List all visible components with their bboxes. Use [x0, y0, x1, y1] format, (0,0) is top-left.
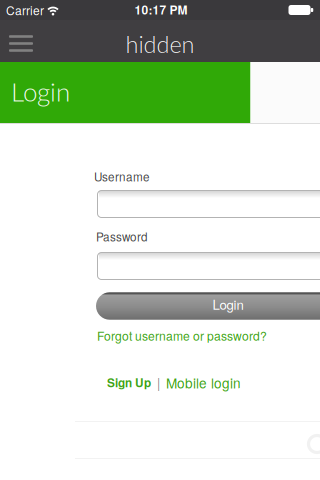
staticText: Carrier: [6, 1, 44, 19]
staticText: Login: [212, 294, 243, 313]
button[interactable]: Login: [96, 292, 320, 320]
staticText: Username: [94, 168, 150, 185]
button[interactable]: Forgot username or password?: [97, 327, 267, 344]
button[interactable]: Menu: [3, 25, 39, 61]
button[interactable]: Sign Up: [107, 374, 151, 391]
staticText: Forgot username or password?: [97, 327, 267, 344]
staticText: Login: [11, 76, 70, 107]
staticText: Password: [96, 228, 148, 245]
textField[interactable]: Password: [103, 251, 320, 281]
staticText: Mobile login: [166, 373, 241, 392]
staticText: 10:17 PM: [134, 1, 187, 18]
staticText: Sign Up: [107, 374, 151, 391]
staticText: hidden: [125, 30, 194, 58]
button[interactable]: Mobile login: [166, 373, 241, 392]
textField[interactable]: Username: [103, 189, 320, 219]
staticText: |: [157, 373, 160, 391]
